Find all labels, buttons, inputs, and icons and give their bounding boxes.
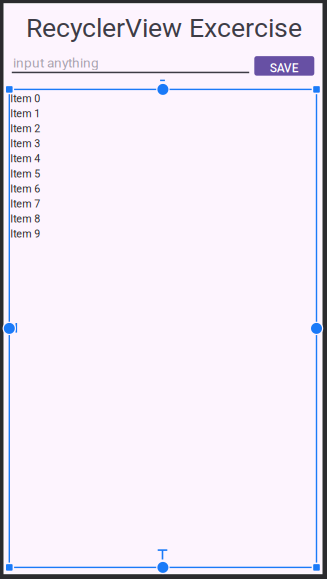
staticText: Item 0 xyxy=(10,92,40,105)
staticText: Item 5 xyxy=(10,167,40,180)
staticText: SAVE xyxy=(270,61,299,75)
staticText: Item 9 xyxy=(10,228,40,240)
staticText: input anything xyxy=(13,55,99,71)
staticText: Item 2 xyxy=(10,122,40,135)
staticText: Item 3 xyxy=(10,137,40,150)
staticText: Item 8 xyxy=(10,213,40,225)
button[interactable]: SAVE xyxy=(254,56,314,76)
staticText: Item 1 xyxy=(10,107,40,120)
staticText: Item 4 xyxy=(10,152,40,165)
staticText: Item 7 xyxy=(10,198,40,210)
staticText: RecyclerView Excercise xyxy=(26,12,302,43)
button[interactable]: input anything xyxy=(12,54,249,78)
staticText: Item 6 xyxy=(10,183,40,195)
